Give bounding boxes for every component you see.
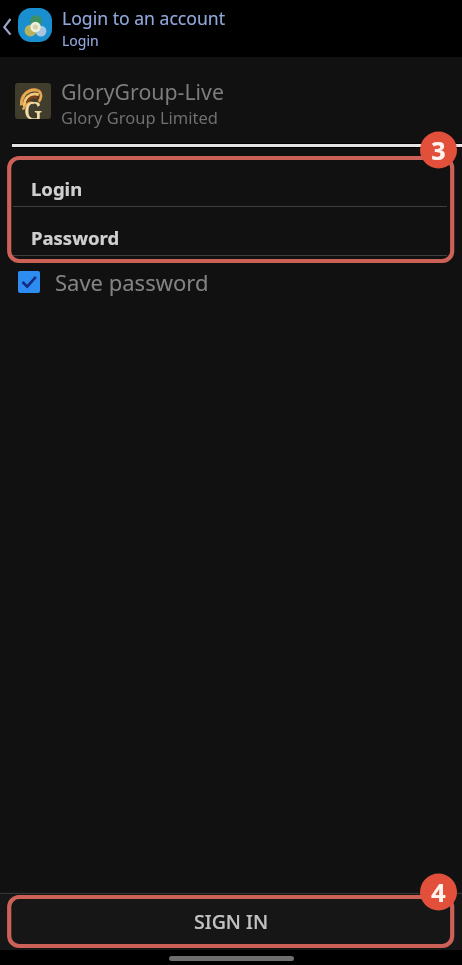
- button[interactable]: Save password: [18, 266, 209, 298]
- staticText: Login to an account: [62, 6, 226, 30]
- button[interactable]: Login: [13, 172, 447, 207]
- staticText: 3: [431, 133, 446, 167]
- staticText: Login: [62, 31, 99, 50]
- staticText: Password: [31, 225, 120, 250]
- other: Back: [0, 14, 18, 42]
- button[interactable]: SIGN IN: [12, 897, 450, 946]
- staticText: Login: [31, 176, 83, 201]
- staticText: SIGN IN: [194, 908, 269, 935]
- staticText: G: [24, 93, 42, 119]
- staticText: 4: [431, 875, 446, 909]
- button[interactable]: [0, 0, 462, 57]
- button[interactable]: Password: [13, 221, 447, 256]
- staticText: Save password: [55, 267, 209, 297]
- staticText: GloryGroup-Live: [61, 77, 224, 106]
- staticText: Glory Group Limited: [61, 106, 218, 128]
